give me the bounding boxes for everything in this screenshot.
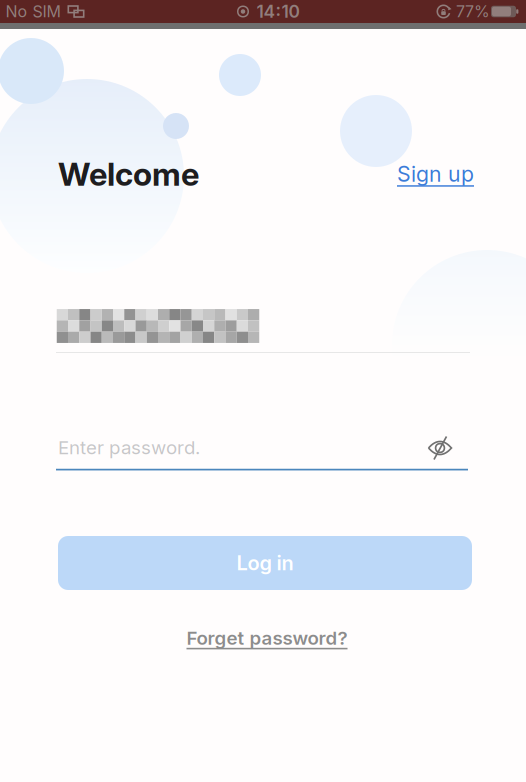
staticText: Log in: [236, 551, 293, 575]
staticText: Welcome: [58, 155, 199, 193]
staticText: 77%: [456, 2, 490, 21]
staticText: Enter password.: [58, 436, 200, 458]
button[interactable]: Show password: [425, 434, 455, 462]
button[interactable]: Log in: [58, 536, 472, 590]
button[interactable]: Sign up: [397, 161, 474, 187]
button[interactable]: Forget password?: [186, 627, 347, 649]
staticText: Sign up: [397, 161, 474, 187]
staticText: 14:10: [256, 1, 299, 22]
staticText: Forget password?: [186, 627, 347, 649]
staticText: No SIM: [5, 2, 60, 21]
